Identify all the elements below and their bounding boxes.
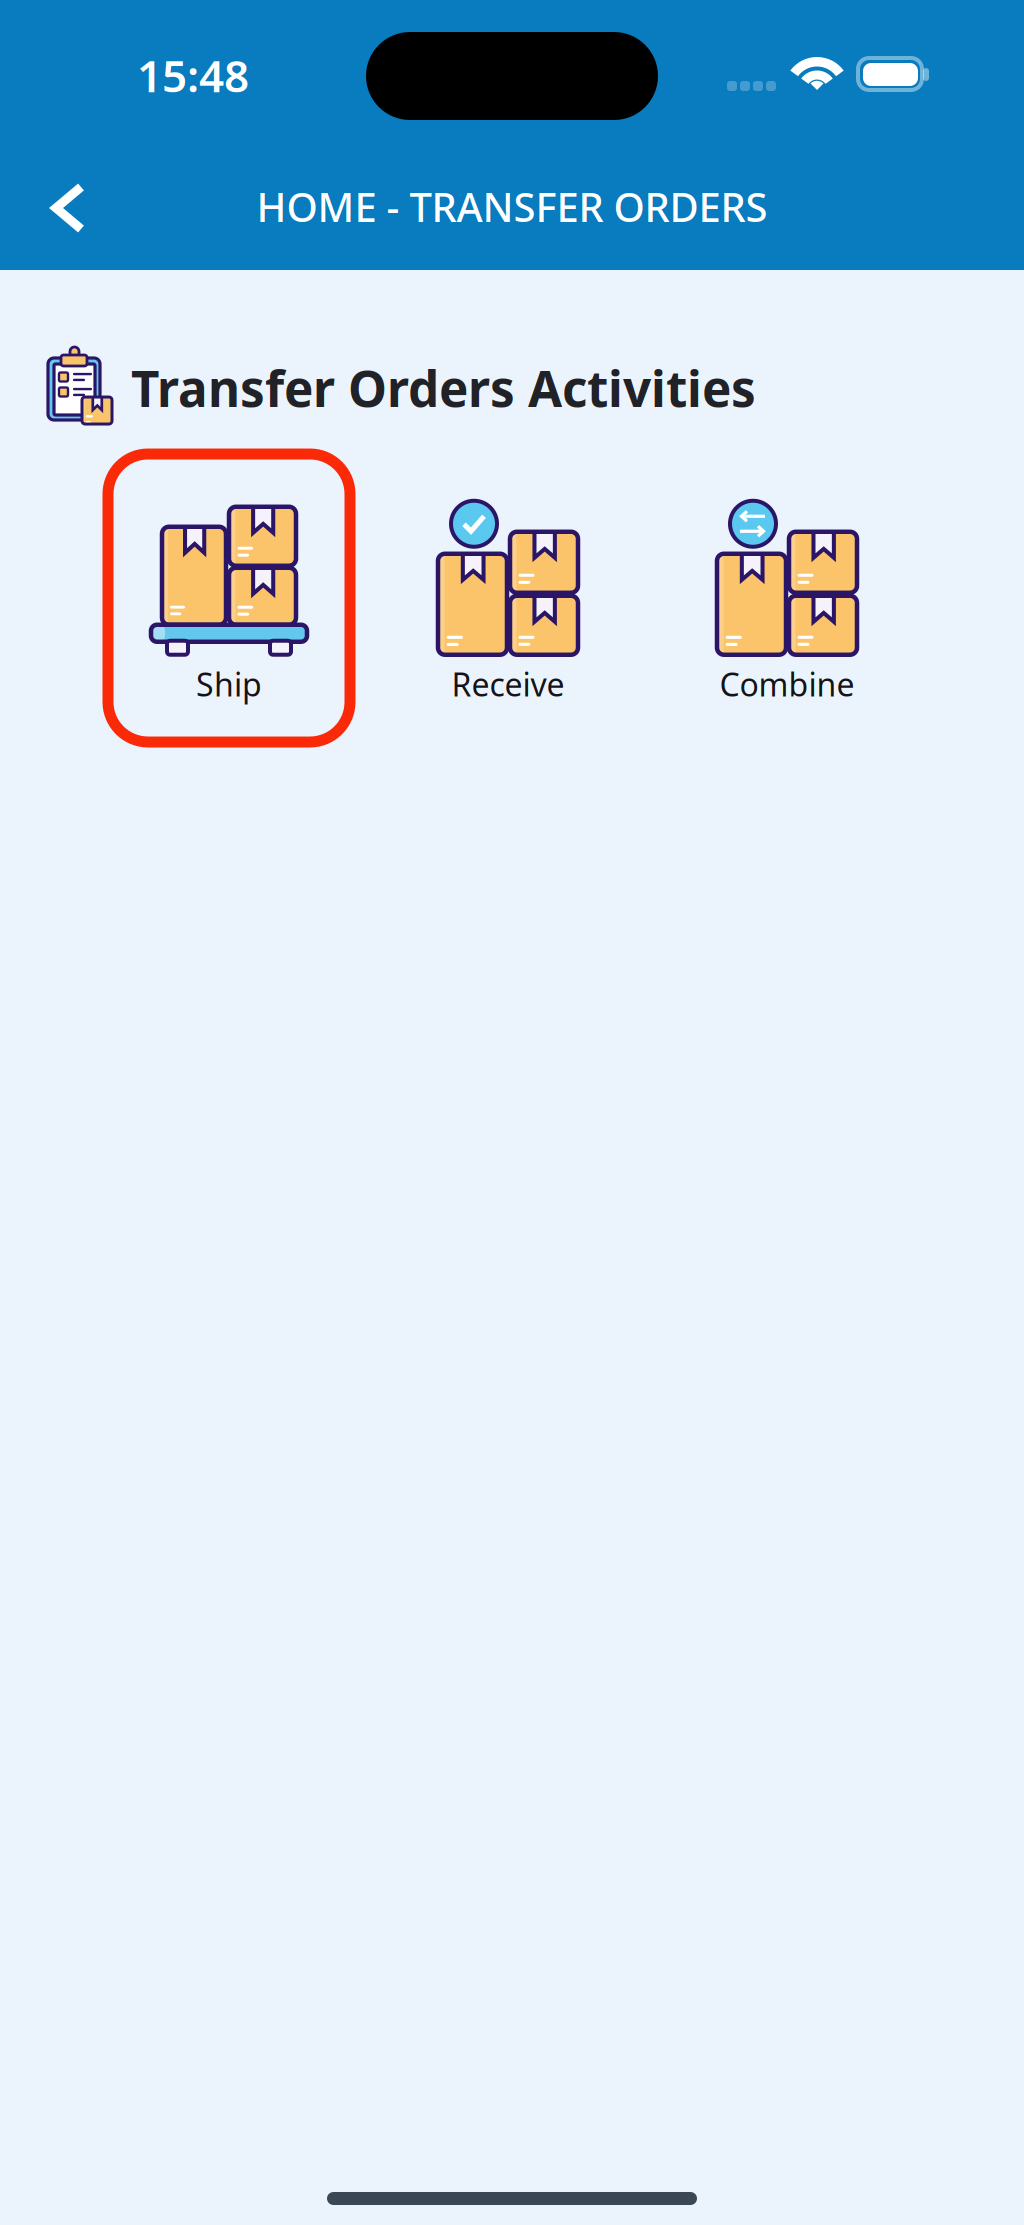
button[interactable]: Receive: [387, 454, 629, 742]
staticText: Transfer Orders Activities: [131, 355, 756, 420]
button[interactable]: Back: [26, 157, 111, 259]
staticText: HOME - TRANSFER ORDERS: [256, 180, 767, 233]
button[interactable]: Combine: [666, 454, 908, 742]
staticText: Ship: [196, 663, 262, 705]
staticText: 15:48: [137, 46, 249, 104]
button[interactable]: Ship: [108, 454, 350, 742]
staticText: Receive: [451, 663, 564, 705]
staticText: Combine: [719, 663, 854, 705]
